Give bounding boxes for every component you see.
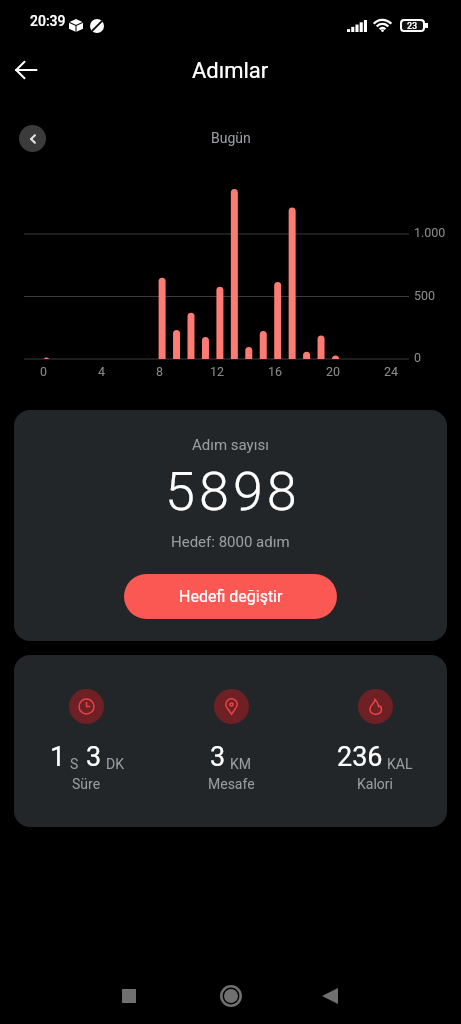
staticText: S	[70, 756, 79, 772]
staticText: KAL	[387, 756, 413, 772]
staticText: 1	[50, 741, 66, 773]
staticText: 12	[210, 364, 225, 379]
staticText: 20:39	[30, 13, 66, 29]
button[interactable]: Back	[2, 46, 50, 94]
staticText: 236	[337, 741, 383, 773]
staticText: 5898	[165, 460, 301, 523]
staticText: 3	[210, 741, 226, 773]
staticText: 23	[407, 21, 418, 30]
button[interactable]: Back	[308, 974, 352, 1018]
staticText: Süre	[72, 776, 101, 792]
staticText: KM	[230, 756, 252, 772]
staticText: Mesafe	[208, 776, 255, 792]
staticText: Hedef: 8000 adım	[171, 533, 290, 551]
staticText: 500	[414, 288, 436, 303]
staticText: Kalori	[357, 776, 393, 792]
staticText: 16	[268, 364, 283, 379]
staticText: 8	[156, 364, 164, 379]
staticText: Adımlar	[192, 58, 269, 84]
staticText: Bugün	[211, 130, 251, 146]
staticText: DK	[106, 756, 124, 772]
button[interactable]: Previous day	[19, 125, 46, 152]
button[interactable]: Recent apps	[107, 974, 151, 1018]
staticText: Hedefi değiştir	[179, 587, 283, 606]
staticText: Adım sayısı	[192, 436, 269, 454]
button[interactable]: Home	[209, 974, 253, 1018]
staticText: 24	[384, 364, 399, 379]
staticText: 20	[326, 364, 341, 379]
staticText: 1.000	[414, 225, 446, 240]
staticText: 0	[40, 364, 48, 379]
staticText: 0	[414, 350, 422, 365]
button[interactable]: Hedefi değiştir	[124, 574, 337, 619]
staticText: 4	[98, 364, 106, 379]
staticText: 3	[86, 741, 102, 773]
